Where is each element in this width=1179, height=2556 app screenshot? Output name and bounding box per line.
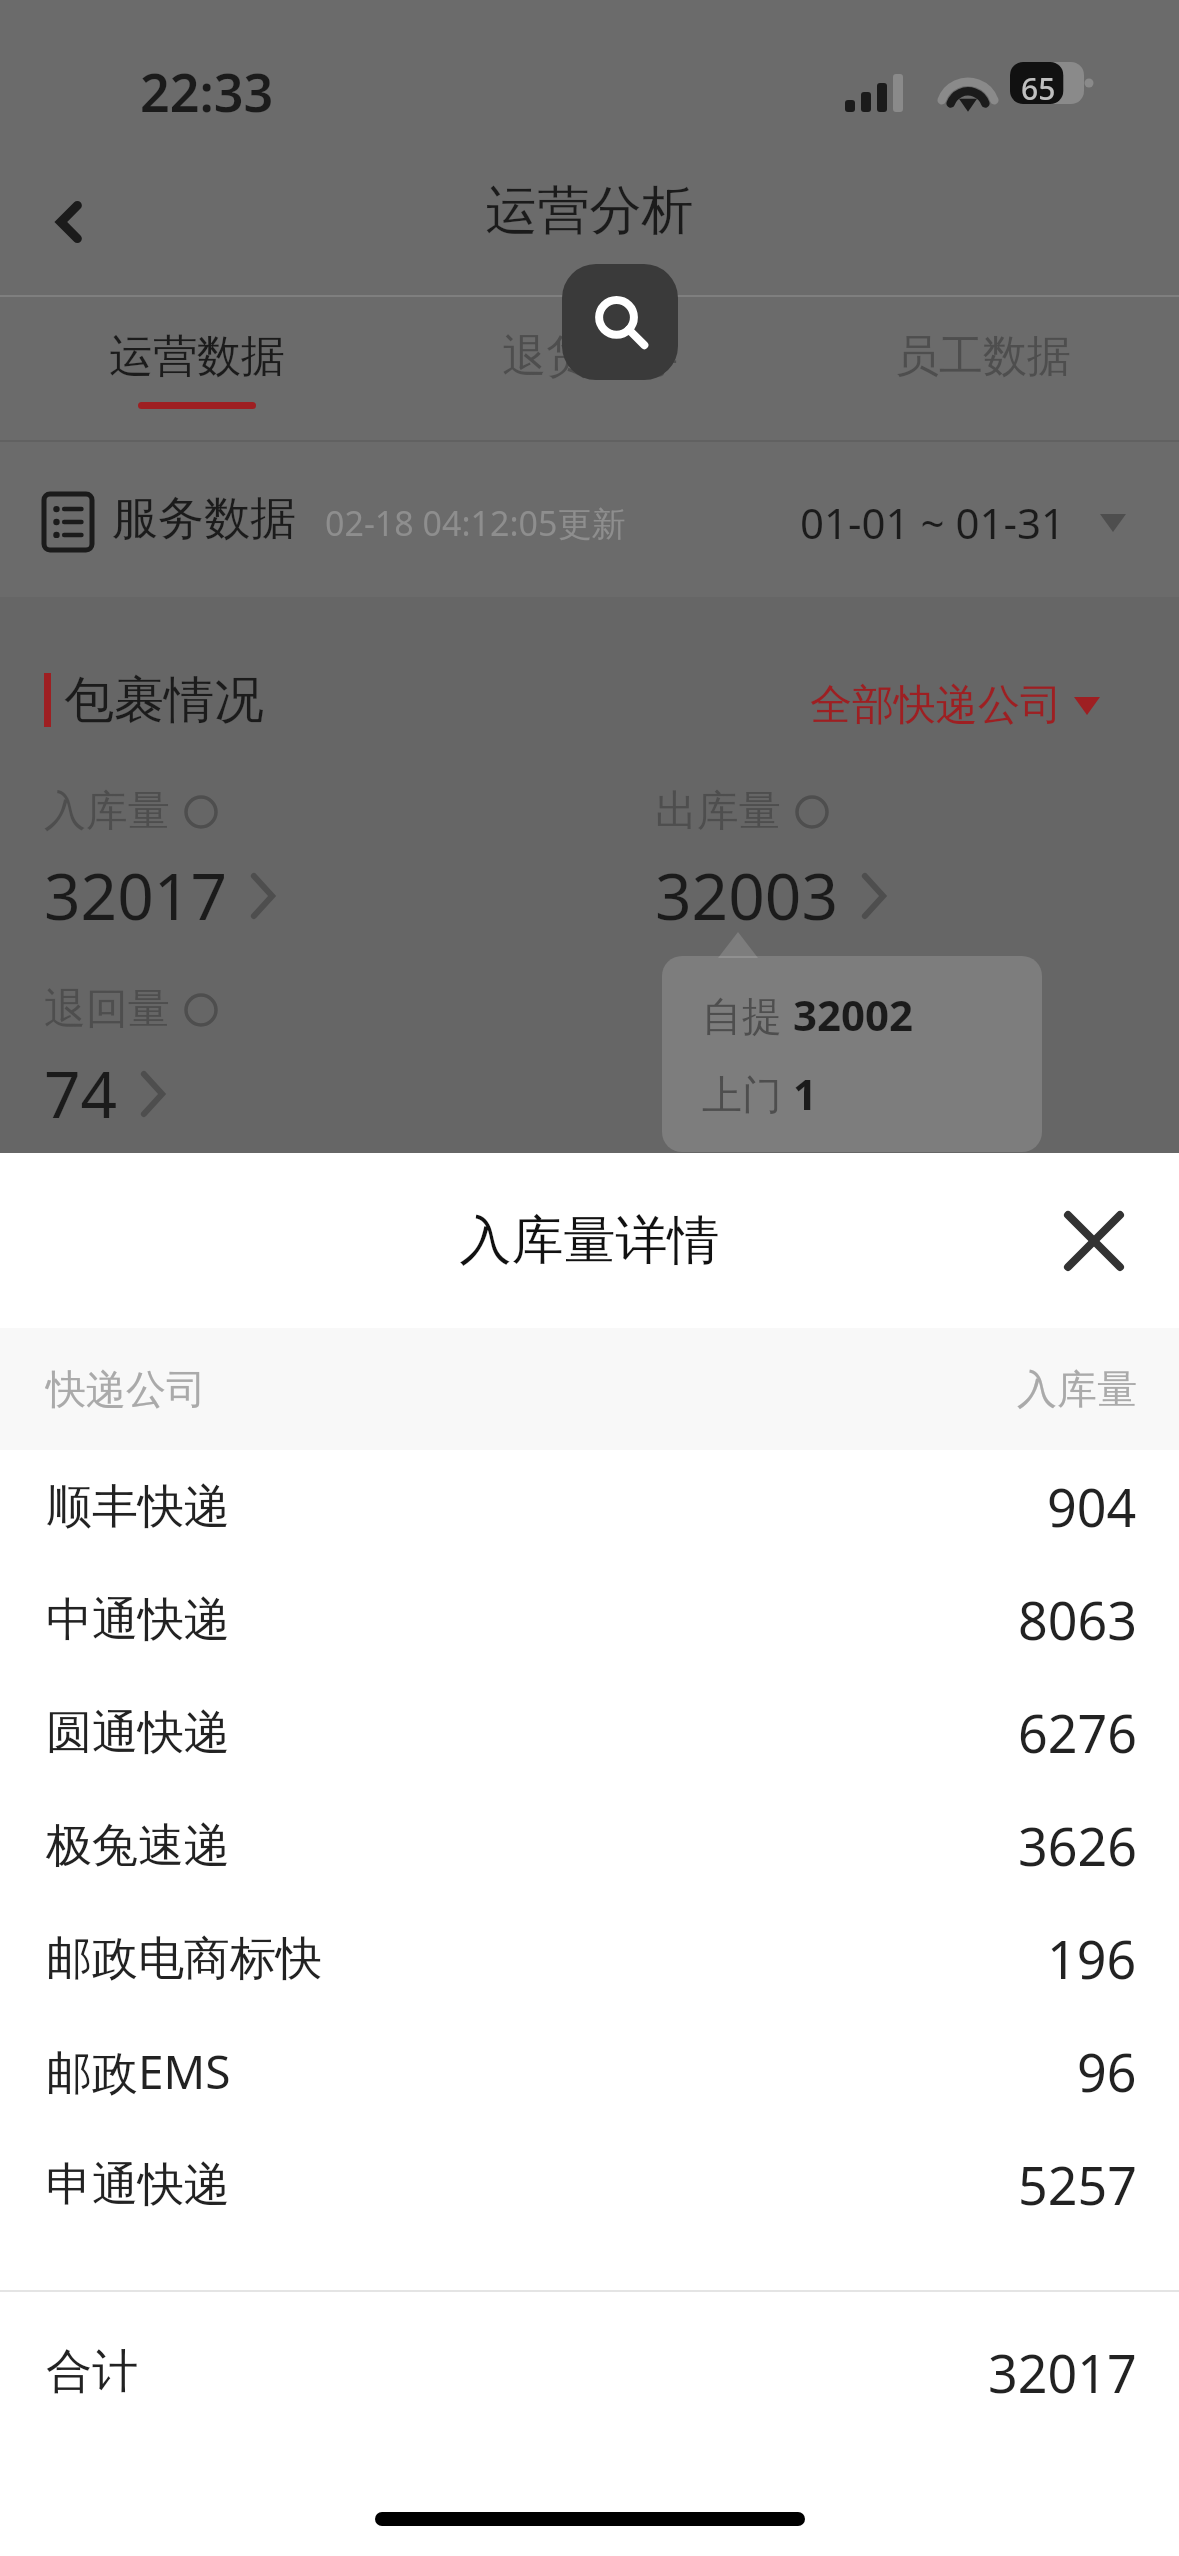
- button[interactable]: Close: [1039, 1186, 1149, 1296]
- staticText: 8063: [1018, 1584, 1137, 1655]
- button[interactable]: 申通快递: [0, 2128, 1179, 2241]
- staticText: 包裹情况: [64, 669, 264, 732]
- button[interactable]: 出库量: [655, 785, 1179, 939]
- staticText: 合计: [46, 2343, 138, 2401]
- staticText: 极兔速递: [46, 1817, 230, 1875]
- staticText: 65: [1021, 68, 1056, 109]
- button[interactable]: 圆通快递: [0, 1676, 1179, 1789]
- staticText: 32002: [793, 986, 914, 1043]
- staticText: 中通快递: [46, 1591, 230, 1649]
- staticText: 32003: [655, 852, 839, 939]
- button[interactable]: 极兔速递: [0, 1789, 1179, 1902]
- button[interactable]: 邮政电商标快: [0, 1902, 1179, 2015]
- staticText: 员工数据: [895, 329, 1071, 384]
- staticText: 3626: [1018, 1810, 1137, 1881]
- staticText: 1: [793, 1065, 818, 1122]
- button[interactable]: 退回量: [44, 983, 604, 1137]
- staticText: 圆通快递: [46, 1704, 230, 1762]
- staticText: 退货暂存: [502, 329, 678, 384]
- button[interactable]: 中通快递: [0, 1563, 1179, 1676]
- staticText: 22:33: [140, 56, 274, 127]
- staticText: 01-01 ~ 01-31: [800, 494, 1066, 551]
- staticText: 出库量: [655, 785, 781, 838]
- staticText: 快递公司: [46, 1364, 206, 1414]
- button[interactable]: Back: [20, 172, 120, 272]
- staticText: 全部快递公司: [810, 679, 1062, 732]
- staticText: 32017: [44, 852, 228, 939]
- staticText: 32017: [988, 2337, 1137, 2408]
- staticText: 服务数据: [112, 490, 296, 548]
- staticText: 邮政EMS: [46, 2040, 231, 2103]
- staticText: 顺丰快递: [46, 1478, 230, 1536]
- staticText: 74: [44, 1050, 118, 1137]
- button[interactable]: 员工数据: [786, 295, 1179, 442]
- staticText: 运营分析: [0, 178, 1179, 244]
- staticText: 02-18 04:12:05更新: [325, 500, 626, 546]
- button[interactable]: 退货暂存: [393, 295, 786, 442]
- staticText: 入库量: [44, 785, 170, 838]
- staticText: 96: [1077, 2036, 1137, 2107]
- staticText: 申通快递: [46, 2156, 230, 2214]
- staticText: 退回量: [44, 983, 170, 1036]
- staticText: 5257: [1018, 2149, 1137, 2220]
- staticText: 入库量: [1017, 1364, 1137, 1414]
- staticText: 6276: [1018, 1697, 1137, 1768]
- staticText: 运营数据: [109, 329, 285, 384]
- button[interactable]: 运营数据: [0, 295, 393, 442]
- staticText: 196: [1047, 1923, 1137, 1994]
- staticText: 邮政电商标快: [46, 1930, 322, 1988]
- staticText: 入库量详情: [0, 1208, 1179, 1274]
- button[interactable]: 全部快递公司: [810, 679, 1100, 732]
- button[interactable]: 顺丰快递: [0, 1450, 1179, 1563]
- button[interactable]: 邮政EMS: [0, 2015, 1179, 2128]
- staticText: 904: [1047, 1471, 1137, 1542]
- button[interactable]: 服务数据: [0, 442, 1179, 597]
- staticText: 上门: [702, 1066, 793, 1121]
- button[interactable]: Search: [562, 264, 678, 380]
- staticText: 自提: [702, 987, 793, 1042]
- button[interactable]: 入库量: [44, 785, 604, 939]
